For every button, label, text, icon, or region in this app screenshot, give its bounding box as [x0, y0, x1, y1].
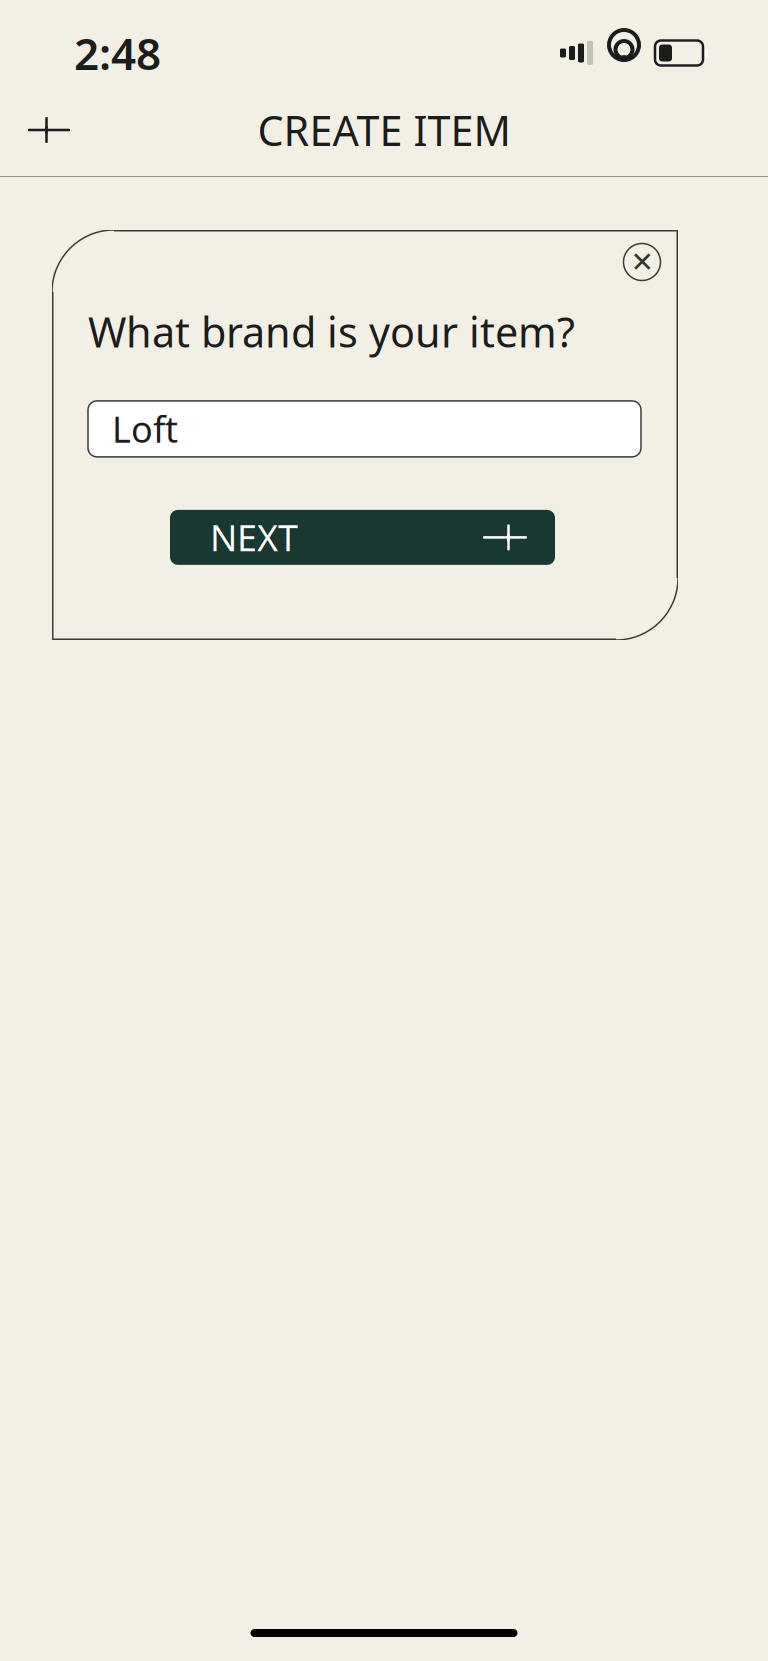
staticText: 2:48: [74, 24, 161, 82]
staticText: What brand is your item?: [88, 304, 575, 359]
button[interactable]: Close: [610, 230, 674, 294]
button[interactable]: Loft: [88, 401, 641, 457]
staticText: Loft: [112, 405, 178, 453]
button[interactable]: Back: [12, 93, 86, 167]
staticText: CREATE ITEM: [257, 103, 510, 157]
button[interactable]: NEXT: [170, 510, 555, 565]
staticText: ✕: [630, 246, 653, 278]
staticText: NEXT: [210, 513, 298, 561]
